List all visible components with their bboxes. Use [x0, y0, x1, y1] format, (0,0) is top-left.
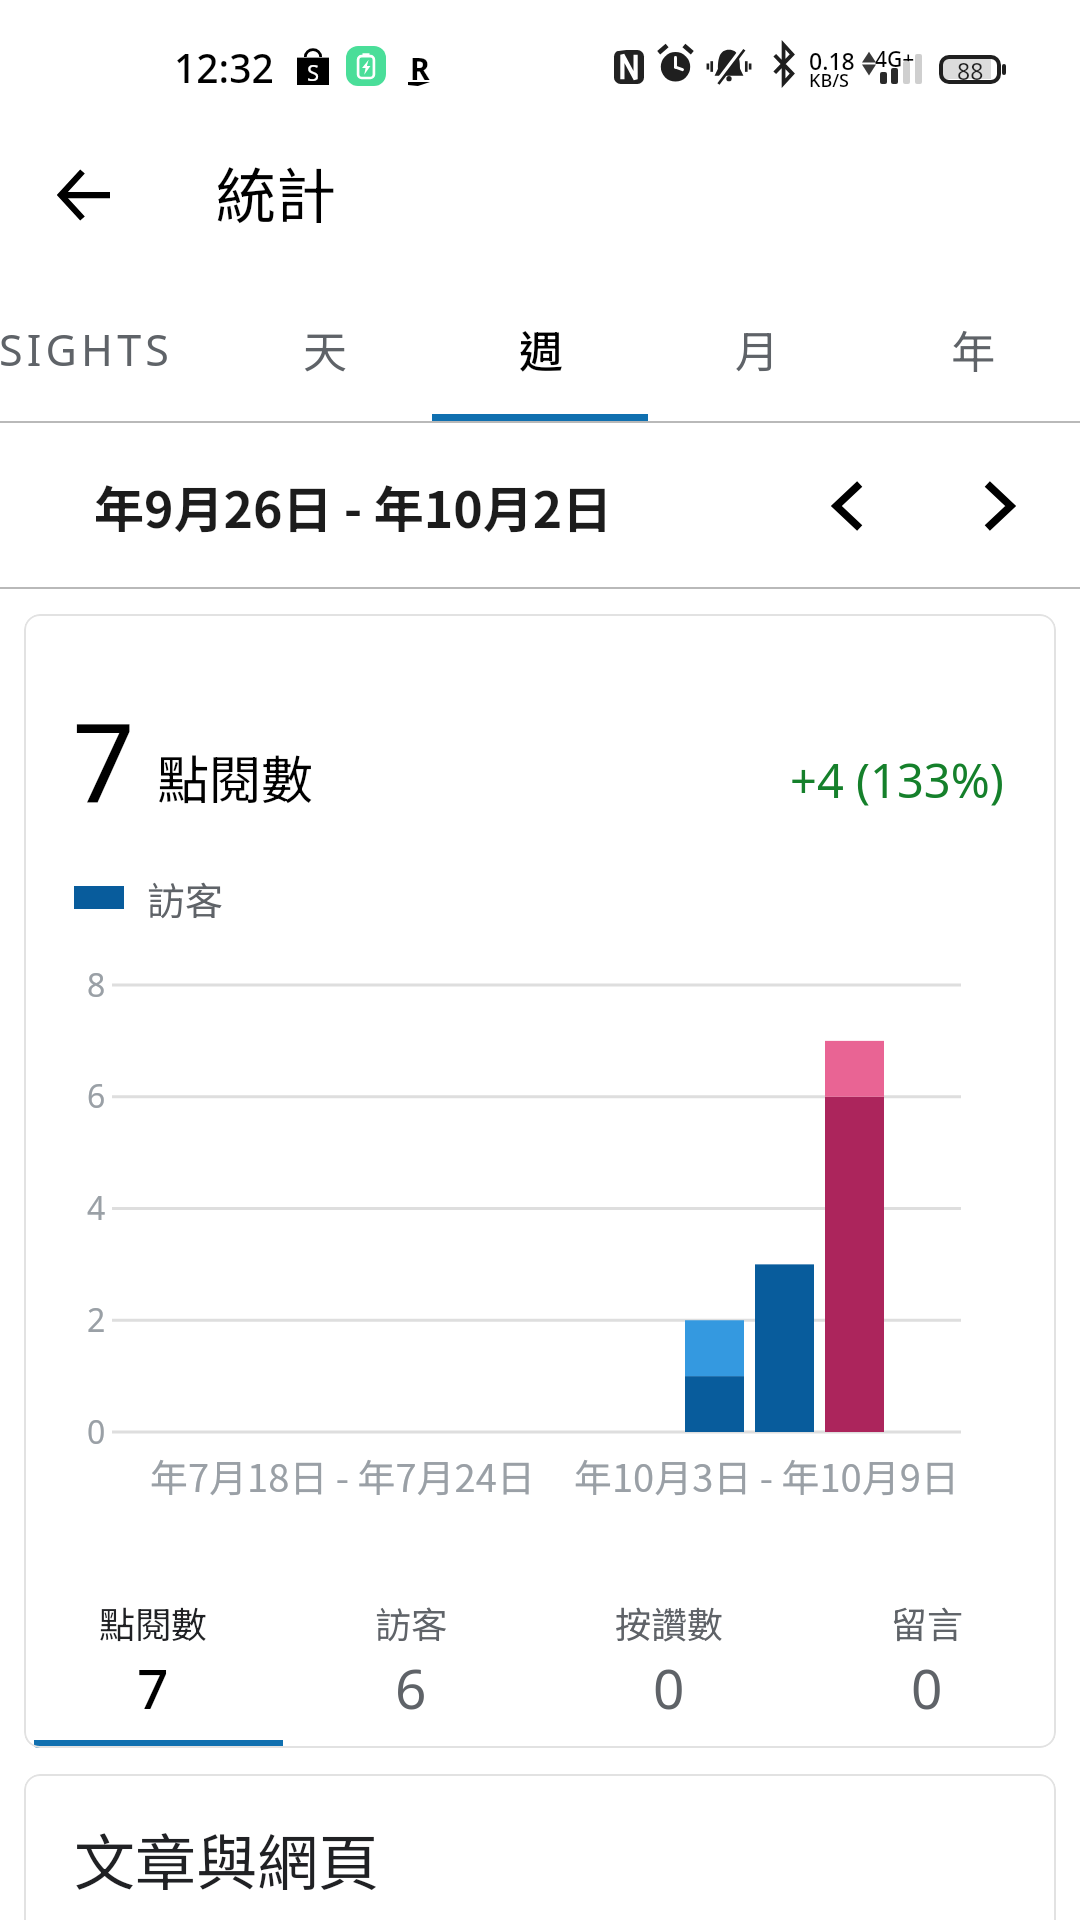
staticText: 0 [653, 1650, 685, 1725]
staticText: 文章與網頁 [74, 1814, 380, 1902]
staticText: 年7月18日 - 年7月24日 [150, 1448, 535, 1503]
staticText: 0 [87, 1410, 106, 1454]
staticText: 點閱數 [99, 1596, 208, 1648]
button[interactable]: 文章與網頁 [24, 1774, 1056, 1920]
staticText: 年10月3日 - 年10月9日 [574, 1448, 959, 1503]
staticText: S [307, 57, 320, 87]
button[interactable]: Next period [944, 451, 1054, 561]
staticText: 年 [951, 317, 995, 381]
staticText: 點閱數 [157, 739, 314, 814]
staticText: 4G+ [875, 45, 915, 74]
button[interactable]: 點閱數 [24, 1596, 282, 1725]
staticText: 6 [395, 1650, 427, 1725]
staticText: 0 [911, 1650, 943, 1725]
button[interactable]: SIGHTS [0, 265, 216, 421]
button[interactable]: 年 [864, 265, 1080, 421]
button[interactable]: 訪客 [282, 1596, 540, 1725]
staticText: R [410, 48, 430, 89]
staticText: 88 [957, 55, 984, 84]
staticText: 8 [87, 963, 106, 1007]
staticText: +4 (133%) [790, 748, 1004, 812]
staticText: 訪客 [147, 871, 224, 926]
staticText: 年9月26日 - 年10月2日 [94, 470, 613, 542]
staticText: 統計 [216, 148, 336, 235]
staticText: 天 [303, 317, 347, 381]
button[interactable]: 按讚數 [540, 1596, 798, 1725]
staticText: 0.18 [809, 45, 855, 76]
button[interactable]: Previous period [793, 451, 903, 561]
staticText: 週 [519, 317, 563, 381]
button[interactable]: Back [37, 147, 133, 243]
staticText: 4 [87, 1186, 106, 1230]
staticText: 7 [72, 685, 135, 835]
staticText: 6 [87, 1074, 106, 1118]
staticText: SIGHTS [0, 320, 171, 379]
staticText: 2 [87, 1298, 106, 1342]
button[interactable]: 週 [432, 265, 648, 421]
staticText: 按讚數 [615, 1596, 724, 1648]
staticText: 月 [735, 317, 779, 381]
button[interactable]: 月 [648, 265, 864, 421]
staticText: 7 [137, 1650, 169, 1725]
staticText: KB/S [809, 68, 849, 93]
button[interactable]: 7 [24, 614, 1056, 1748]
staticText: 留言 [891, 1596, 964, 1648]
staticText: 12:32 [174, 41, 274, 94]
button[interactable]: 天 [216, 265, 432, 421]
button[interactable]: 留言 [798, 1596, 1056, 1725]
staticText: 訪客 [375, 1596, 448, 1648]
